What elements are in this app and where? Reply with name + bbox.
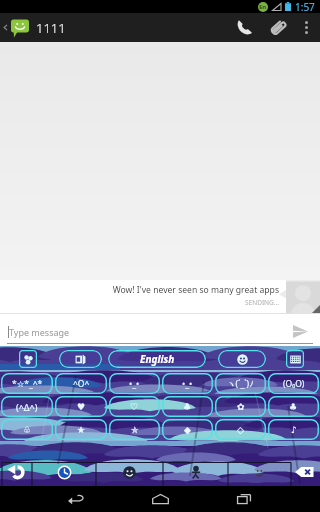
button[interactable]: ◇ (215, 419, 266, 440)
button[interactable]: Emoji (218, 350, 266, 368)
staticText: *☆*_^* (12, 378, 43, 390)
button[interactable]: *☆*_^* (1, 373, 53, 394)
staticText: ◇ (237, 425, 244, 435)
staticText: ヽ(´_`)ﾉ (227, 378, 254, 390)
staticText: ♪ (291, 425, 297, 435)
button[interactable]: •_• (162, 373, 213, 394)
staticText: ◆ (184, 425, 191, 435)
button[interactable]: ヽ(´_`)ﾉ (215, 373, 266, 394)
button[interactable]: Emoji settings (19, 350, 37, 368)
button[interactable]: ♪ (268, 419, 319, 440)
button[interactable]: More options (295, 13, 317, 42)
button[interactable]: Attach (261, 13, 295, 42)
button[interactable]: English (108, 350, 206, 368)
button[interactable]: Recent emoji (32, 458, 96, 486)
button[interactable]: Recents (216, 486, 272, 512)
staticText: En (259, 3, 267, 11)
button[interactable]: Call (227, 13, 261, 42)
button[interactable]: Send (280, 317, 320, 346)
staticText: ♥ (77, 402, 86, 412)
button[interactable]: ♣ (162, 396, 213, 417)
button[interactable]: ★ (55, 419, 107, 440)
staticText: SENDING... (0, 298, 279, 307)
button[interactable]: Back (0, 458, 32, 486)
button[interactable]: ♡ (109, 396, 160, 417)
staticText: ♣ (289, 402, 298, 412)
button[interactable]: Sound (59, 350, 102, 368)
staticText: English (140, 352, 175, 366)
staticText: ^O^ (73, 378, 90, 390)
staticText: ♣ (183, 402, 192, 412)
staticText: 1111 (36, 19, 66, 37)
staticText: ♡ (130, 402, 139, 412)
button[interactable]: Smileys (96, 458, 163, 486)
staticText: 1:57 (295, 0, 315, 13)
button[interactable]: ♥ (55, 396, 107, 417)
button[interactable]: ♣ (268, 396, 319, 417)
staticText: ✯ (131, 425, 139, 435)
staticText: ♧ (23, 425, 32, 435)
staticText: •_• (182, 378, 193, 390)
button[interactable]: Nature (228, 458, 291, 486)
staticText: ★ (77, 425, 86, 435)
button[interactable]: •_• (109, 373, 160, 394)
button[interactable]: ^O^ (55, 373, 107, 394)
button[interactable]: ◆ (162, 419, 213, 440)
staticText: (O₀O) (283, 378, 305, 390)
button[interactable]: Keyboard (286, 350, 304, 368)
button[interactable]: People (163, 458, 228, 486)
staticText: ✿ (237, 402, 245, 412)
button[interactable]: Back (48, 486, 104, 512)
button[interactable]: ✯ (109, 419, 160, 440)
staticText: Wow! I've never seen so many great apps (0, 284, 279, 296)
button[interactable]: (^Δ^) (1, 396, 53, 417)
staticText: Type message (9, 326, 70, 338)
button[interactable]: (O₀O) (268, 373, 319, 394)
button[interactable]: ♧ (1, 419, 53, 440)
staticText: (^Δ^) (16, 401, 38, 413)
button[interactable]: ✿ (215, 396, 266, 417)
staticText: •_• (129, 378, 140, 390)
button[interactable]: Home (132, 486, 188, 512)
button[interactable]: Delete (291, 458, 320, 486)
